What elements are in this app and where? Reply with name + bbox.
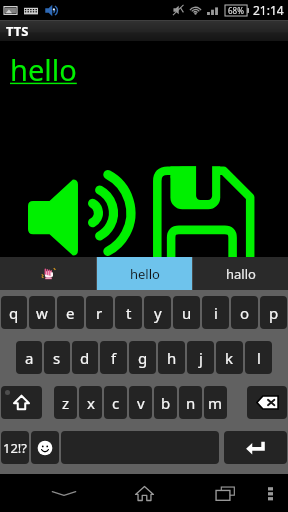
button[interactable]: o [231,296,258,329]
staticText: p [269,303,279,323]
button[interactable]: Shift [1,386,42,419]
staticText: u [182,303,192,323]
staticText: g [138,348,148,368]
staticText: j [199,348,203,368]
button[interactable]: 12!? [1,431,29,464]
staticText: d [80,348,90,368]
staticText: y [154,303,162,323]
button[interactable]: Voice input [0,257,96,290]
button[interactable]: l [245,341,272,374]
staticText: e [66,303,75,323]
button[interactable]: z [54,386,77,419]
button[interactable]: r [86,296,113,329]
staticText: w [36,303,48,323]
button[interactable]: t [115,296,142,329]
button[interactable]: Speak [26,168,138,260]
staticText: l [257,348,261,368]
button[interactable]: k [216,341,243,374]
button[interactable]: Save [152,165,256,260]
button[interactable]: v [129,386,152,419]
button[interactable]: q [1,296,27,329]
staticText: TTS [6,22,29,40]
button[interactable]: a [16,341,42,374]
button[interactable]: m [204,386,227,419]
button[interactable]: y [144,296,171,329]
staticText: v [137,393,145,413]
staticText: a [25,348,34,368]
button[interactable]: Emoji [31,431,59,464]
staticText: b [161,393,171,413]
button[interactable]: x [79,386,102,419]
staticText: s [53,348,61,368]
staticText: t [126,303,132,323]
staticText: r [96,303,103,323]
staticText: 68% [228,5,244,16]
button[interactable]: c [104,386,127,419]
staticText: o [240,303,250,323]
button[interactable]: Hide keyboard [24,474,104,512]
staticText: n [186,393,196,413]
staticText: x [87,393,95,413]
button[interactable]: w [29,296,55,329]
staticText: hello [130,265,160,283]
button[interactable]: s [44,341,70,374]
staticText: c [112,393,120,413]
staticText: z [62,393,70,413]
staticText: m [208,393,223,413]
button[interactable]: Backspace [247,386,287,419]
button[interactable]: Home [104,474,184,512]
staticText: 12!? [3,439,28,457]
button[interactable]: p [260,296,287,329]
staticText: h [167,348,177,368]
staticText: hallo [226,265,256,283]
staticText: f [111,348,117,368]
button[interactable]: g [129,341,156,374]
button[interactable]: d [72,341,98,374]
button[interactable]: e [57,296,84,329]
button[interactable]: u [173,296,200,329]
staticText: q [9,303,19,323]
staticText: k [225,348,234,368]
staticText: 21:14 [253,2,284,18]
button[interactable]: Enter [224,431,287,464]
staticText: i [214,303,218,323]
button[interactable]: n [179,386,202,419]
button[interactable]: Recents [185,474,265,512]
button[interactable]: f [100,341,127,374]
button[interactable]: hello [97,257,192,290]
button[interactable]: j [187,341,214,374]
button[interactable]: h [158,341,185,374]
button[interactable]: b [154,386,177,419]
button[interactable]: i [202,296,229,329]
button[interactable]: hallo [193,257,288,290]
staticText: hello [10,50,77,89]
button[interactable]: More options [252,474,288,512]
